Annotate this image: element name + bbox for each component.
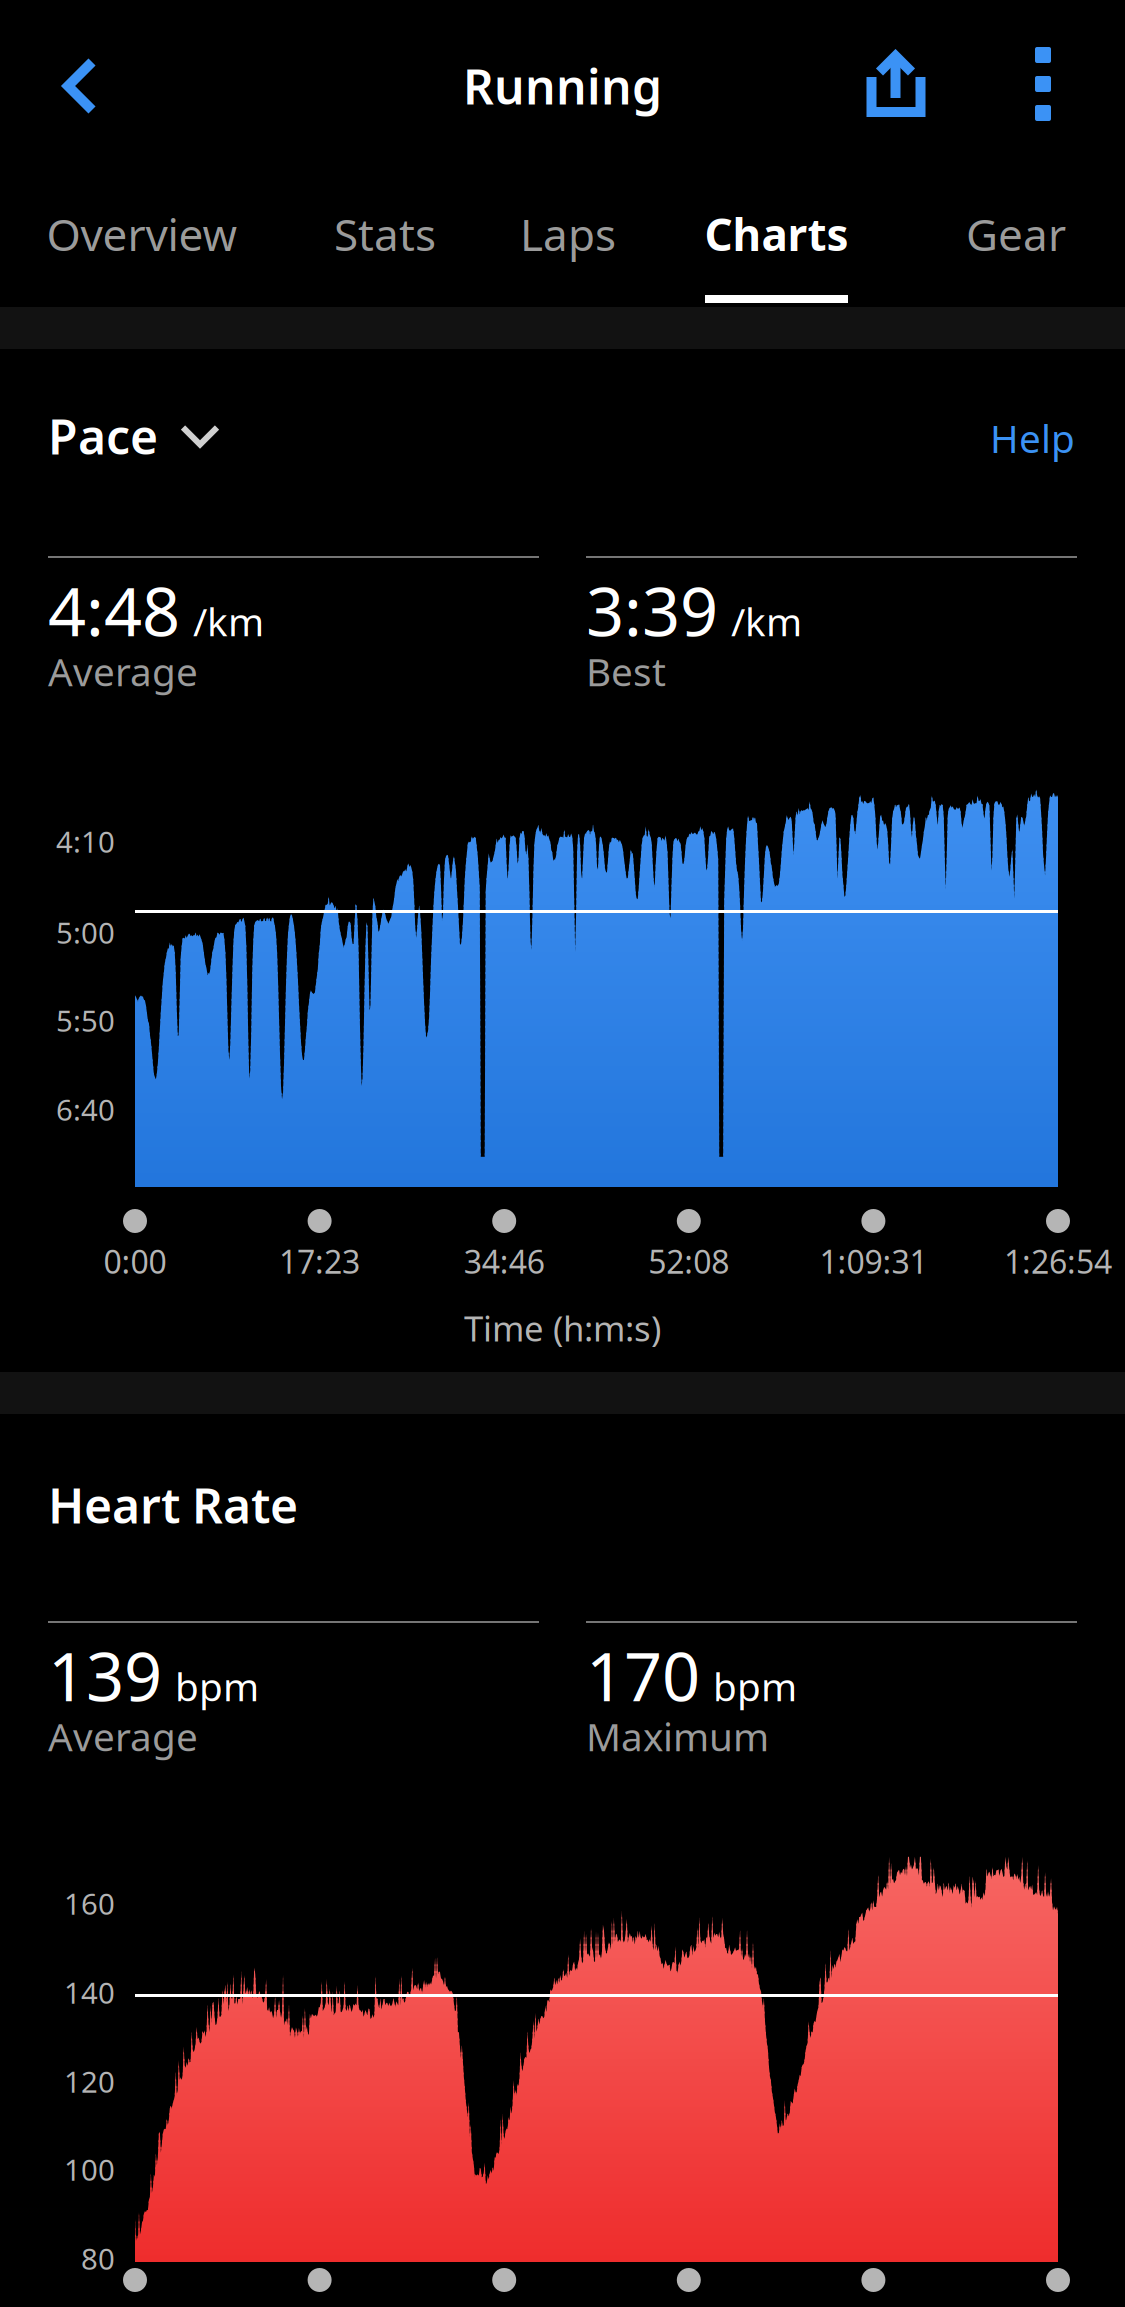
staticText: 1:09:31	[819, 1240, 927, 1282]
staticText: 4:10	[56, 822, 115, 861]
button[interactable]: Overview	[47, 208, 237, 303]
staticText: 120	[64, 2062, 115, 2101]
staticText: 3:39	[586, 566, 718, 654]
staticText: 5:50	[56, 1001, 115, 1040]
staticText: Help	[990, 412, 1075, 464]
staticText: Heart Rate	[48, 1473, 298, 1537]
staticText: Best	[586, 645, 666, 697]
staticText: 1:26:54	[1004, 1240, 1112, 1282]
button[interactable]: Pace	[48, 408, 220, 464]
button[interactable]: Share	[841, 24, 951, 144]
staticText: Stats	[334, 205, 436, 263]
staticText: Gear	[966, 205, 1066, 263]
staticText: 6:40	[56, 1090, 115, 1129]
staticText: Pace	[48, 404, 158, 468]
staticText: /km	[193, 595, 264, 647]
button[interactable]: Gear	[966, 208, 1066, 303]
staticText: 5:00	[56, 913, 115, 952]
staticText: 52:08	[648, 1240, 729, 1282]
staticText: 139	[48, 1631, 162, 1719]
staticText: 4:48	[48, 566, 180, 654]
staticText: Maximum	[586, 1710, 769, 1762]
button[interactable]: Help	[915, 410, 1075, 466]
staticText: Time (h:m:s)	[464, 1305, 661, 1351]
staticText: 17:23	[279, 1240, 360, 1282]
staticText: Laps	[520, 205, 616, 263]
button[interactable]: Back	[25, 26, 135, 146]
staticText: Charts	[704, 205, 848, 263]
staticText: 0:00	[103, 1240, 166, 1282]
staticText: 170	[586, 1631, 700, 1719]
staticText: /km	[731, 595, 802, 647]
staticText: bpm	[713, 1660, 797, 1712]
staticText: bpm	[175, 1660, 259, 1712]
button[interactable]: Laps	[522, 208, 614, 303]
staticText: 80	[81, 2239, 115, 2278]
staticText: 34:46	[464, 1240, 545, 1282]
staticText: 100	[64, 2150, 115, 2189]
button[interactable]: Charts	[705, 208, 848, 303]
staticText: Overview	[46, 205, 237, 263]
staticText: Average	[48, 1710, 198, 1762]
staticText: 140	[64, 1973, 115, 2012]
button[interactable]: Stats	[335, 208, 435, 303]
staticText: Running	[463, 54, 662, 118]
staticText: 160	[64, 1884, 115, 1923]
button[interactable]: More options	[988, 24, 1098, 144]
staticText: Average	[48, 645, 198, 697]
